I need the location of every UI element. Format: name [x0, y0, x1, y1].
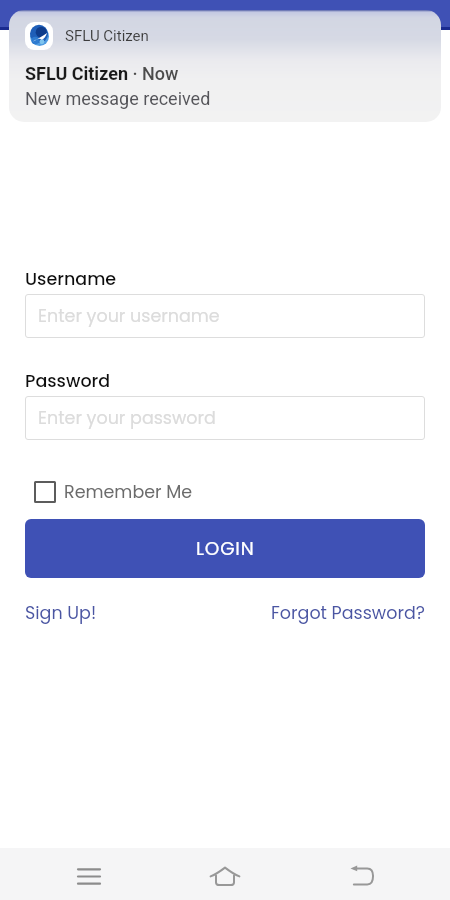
button[interactable]: Remember Me [25, 475, 193, 509]
button[interactable]: Recent apps [65, 852, 113, 900]
button[interactable]: LOGIN [25, 519, 425, 578]
staticText: Remember Me [64, 480, 193, 505]
staticText: Enter your username [38, 304, 220, 329]
staticText: SFLU Citizen [65, 27, 149, 45]
staticText: New message received [25, 88, 211, 109]
staticText: Sign Up! [25, 601, 97, 626]
button[interactable]: Home [201, 852, 249, 900]
staticText: SFLU Citizen · Now [25, 63, 179, 84]
staticText: Username [25, 267, 117, 292]
button[interactable]: Back [338, 852, 386, 900]
button[interactable]: Sign Up! [25, 597, 97, 630]
button[interactable]: Forgot Password? [271, 597, 425, 630]
staticText: Enter your password [38, 406, 216, 431]
button[interactable]: Enter your username [25, 294, 425, 338]
staticText: Password [25, 369, 111, 394]
button[interactable]: SFLU Citizen [9, 10, 441, 122]
staticText: LOGIN [196, 536, 255, 562]
staticText: Forgot Password? [271, 601, 425, 626]
button[interactable]: Enter your password [25, 396, 425, 440]
